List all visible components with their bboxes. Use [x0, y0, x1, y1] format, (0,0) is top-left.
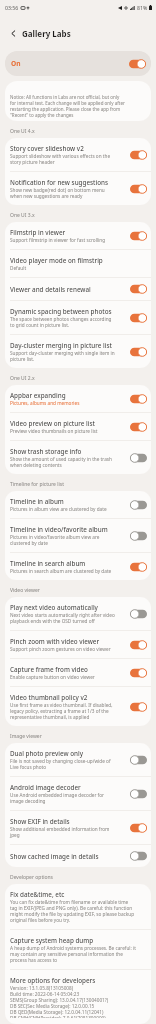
- button[interactable]: Filmstrip in viewer: [5, 222, 151, 249]
- staticText: Video player mode on filmstrip: [10, 256, 103, 265]
- button[interactable]: Timeline in video/favorite album: [5, 519, 151, 552]
- button[interactable]: Switch on: [130, 150, 147, 160]
- button[interactable]: Video player mode on filmstrip: [5, 250, 151, 277]
- staticText: One UI 3.x: [10, 212, 35, 219]
- button[interactable]: Timeline in album: [5, 491, 151, 518]
- staticText: Show EXIF in details: [10, 817, 70, 826]
- button[interactable]: Day-cluster merging in picture list: [5, 335, 151, 368]
- button[interactable]: Dual photo preview only: [5, 743, 151, 776]
- staticText: Preview video thumbnails on picture list: [10, 428, 98, 434]
- staticText: Timeline in video/favorite album: [10, 525, 108, 534]
- staticText: Capture system heap dump: [10, 936, 94, 945]
- staticText: Show the amount of used capacity in the …: [10, 456, 112, 468]
- button[interactable]: Switch on: [130, 394, 147, 404]
- button[interactable]: Android image decoder: [5, 777, 151, 810]
- button[interactable]: Switch on: [130, 313, 147, 323]
- button[interactable]: Switch off: [130, 851, 147, 861]
- button[interactable]: Switch on: [130, 231, 147, 241]
- staticText: Capture frame from video: [10, 665, 88, 674]
- staticText: Use Android embedded image decoder for i…: [10, 792, 105, 804]
- staticText: Developer options: [10, 874, 54, 881]
- button[interactable]: Switch on: [130, 184, 147, 194]
- button[interactable]: Capture frame from video: [5, 659, 151, 686]
- staticText: Support pinch zoom gestures on video vie…: [10, 646, 111, 652]
- staticText: Dynamic spacing between photos: [10, 307, 112, 316]
- staticText: File is not saved by changing close-up/w…: [10, 758, 111, 770]
- button[interactable]: Switch off: [130, 453, 147, 463]
- button[interactable]: Dynamic spacing between photos: [5, 301, 151, 334]
- button[interactable]: Show EXIF in details: [5, 811, 151, 844]
- staticText: Pictures in video/favorite album view ar…: [10, 534, 100, 546]
- button[interactable]: Pinch zoom with video viewer: [5, 631, 151, 658]
- staticText: Video viewer: [10, 587, 40, 594]
- staticText: Notification for new suggestions: [10, 178, 109, 187]
- staticText: Filmstrip in viewer: [10, 228, 66, 237]
- staticText: Use first frame as video thumbnail. If d…: [10, 702, 113, 720]
- staticText: Next video starts automatically right af…: [10, 612, 115, 624]
- staticText: A heap dump of Android systems processes…: [10, 945, 136, 963]
- button[interactable]: Switch on: [130, 422, 147, 432]
- button[interactable]: Switch on: [130, 640, 147, 650]
- button[interactable]: Switch on: [130, 702, 147, 712]
- staticText: 81%: [137, 4, 148, 11]
- button[interactable]: Switch on: [130, 347, 147, 357]
- staticText: Appbar expanding: [10, 391, 66, 400]
- staticText: Support slideshow with various effects o…: [10, 153, 111, 165]
- button[interactable]: Switch off: [130, 609, 147, 619]
- button[interactable]: Switch off: [130, 789, 147, 799]
- button[interactable]: On: [5, 51, 151, 76]
- staticText: Notice: All functions in Labs are not of…: [10, 94, 125, 118]
- button[interactable]: Show cached image in details: [5, 845, 151, 867]
- button[interactable]: Switch off: [130, 531, 147, 541]
- staticText: Fix date&time, etc: [10, 890, 65, 899]
- button[interactable]: Timeline in search album: [5, 553, 151, 580]
- button[interactable]: Switch on: [130, 823, 147, 833]
- staticText: Play next video automatically: [10, 603, 98, 612]
- staticText: Pinch zoom with video viewer: [10, 637, 100, 646]
- staticText: Timeline for picture list: [10, 481, 64, 488]
- button[interactable]: Fix date&time, etc: [5, 884, 151, 929]
- button[interactable]: More options for developers: [5, 970, 151, 1024]
- staticText: Pictures, albums and memories: [10, 400, 80, 406]
- staticText: Show additional embedded information fro…: [10, 826, 110, 838]
- button[interactable]: Show trash storage info: [5, 441, 151, 474]
- staticText: Version: 13.1.05.8(13105008) Build time:…: [10, 985, 109, 1018]
- button[interactable]: Story cover slideshow v2: [5, 138, 151, 171]
- button[interactable]: Switch off: [130, 500, 147, 510]
- staticText: One UI 4.x: [10, 128, 35, 135]
- staticText: Show new badge(red dot) on bottom menu w…: [10, 187, 105, 199]
- button[interactable]: Video preview on picture list: [5, 413, 151, 440]
- button[interactable]: Switch on: [130, 668, 147, 678]
- button[interactable]: Capture system heap dump: [5, 930, 151, 969]
- staticText: The space between photos changes accordi…: [10, 316, 112, 328]
- staticText: One UI 2.x: [10, 375, 35, 382]
- staticText: Enable capture button on video viewer: [10, 674, 95, 680]
- button[interactable]: Switch on: [130, 284, 147, 294]
- staticText: Dual photo preview only: [10, 749, 84, 758]
- button[interactable]: Appbar expanding: [5, 385, 151, 412]
- staticText: Support day-cluster merging with single …: [10, 350, 115, 362]
- staticText: On: [11, 59, 21, 68]
- button[interactable]: Viewer and details renewal: [5, 278, 151, 300]
- staticText: Support filmstrip in viewer for fast scr…: [10, 237, 106, 243]
- staticText: Pictures in search album are clustered b…: [10, 568, 112, 574]
- staticText: Gallery Labs: [22, 28, 71, 39]
- staticText: Timeline in album: [10, 497, 64, 506]
- button[interactable]: Switch off: [130, 755, 147, 765]
- staticText: Show cached image in details: [10, 852, 99, 861]
- staticText: Story cover slideshow v2: [10, 144, 84, 153]
- staticText: Viewer and details renewal: [10, 285, 91, 294]
- staticText: Video thumbnail policy v2: [10, 693, 88, 702]
- button[interactable]: Switch on: [130, 562, 147, 572]
- button[interactable]: Play next video automatically: [5, 597, 151, 630]
- button[interactable]: Switch on: [129, 59, 146, 69]
- staticText: Day-cluster merging in picture list: [10, 341, 112, 350]
- staticText: Timeline in search album: [10, 559, 86, 568]
- button[interactable]: Video thumbnail policy v2: [5, 687, 151, 726]
- staticText: Android image decoder: [10, 783, 81, 792]
- staticText: You can fix date&time from filename or a…: [10, 899, 135, 923]
- staticText: Video preview on picture list: [10, 419, 95, 428]
- button[interactable]: Navigate up: [6, 26, 20, 40]
- button[interactable]: Notification for new suggestions: [5, 172, 151, 205]
- staticText: 03:56: [5, 4, 19, 11]
